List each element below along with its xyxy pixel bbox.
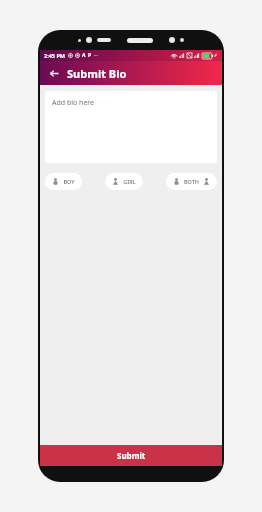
staticText: 2:45 PM bbox=[44, 52, 66, 59]
button[interactable]: BOY bbox=[45, 173, 82, 190]
button[interactable]: Back bbox=[46, 65, 62, 81]
staticText: Add bio here bbox=[52, 98, 95, 108]
staticText: Submit Bio bbox=[67, 66, 127, 81]
staticText: GIRL bbox=[123, 178, 136, 185]
staticText: BOTH bbox=[184, 178, 199, 185]
button[interactable]: GIRL bbox=[105, 173, 143, 190]
button[interactable]: Submit bbox=[40, 445, 222, 466]
staticText: ··· bbox=[94, 52, 99, 59]
button[interactable]: Add bio here bbox=[45, 91, 217, 163]
staticText: Submit bbox=[117, 450, 146, 461]
staticText: P bbox=[88, 52, 92, 59]
button[interactable]: BOTH bbox=[166, 173, 217, 190]
staticText: A bbox=[82, 52, 86, 59]
staticText: BOY bbox=[63, 178, 75, 185]
staticText: ⚡ bbox=[214, 53, 218, 58]
